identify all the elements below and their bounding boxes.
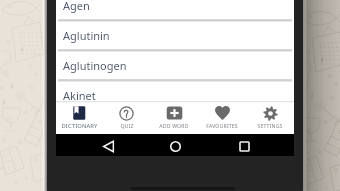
button[interactable]: Agen [56,0,294,22]
button[interactable]: Aglutinogen [56,52,294,82]
button[interactable]: Akinet [56,82,294,112]
button[interactable]: DICTIONARY [56,101,103,134]
staticText: SETTINGS [257,122,283,129]
staticText: Akinet [63,88,96,103]
staticText: Aglutinogen [63,58,127,73]
staticText: DICTIONARY [61,122,98,130]
button[interactable]: Aglutinin [56,22,294,52]
staticText: Agen [63,0,90,13]
staticText: ADD WORD [159,122,189,129]
button[interactable]: ADD WORD [150,101,198,134]
staticText: QUIZ [120,122,134,129]
button[interactable]: Back [94,135,122,157]
staticText: FAVOURITES [206,122,238,129]
staticText: Aglutinin [63,28,110,43]
button[interactable]: SETTINGS [246,101,294,134]
button[interactable]: Home [161,135,189,157]
button[interactable]: QUIZ [103,101,150,134]
button[interactable]: FAVOURITES [198,101,246,134]
button[interactable]: Recent apps [230,135,258,157]
